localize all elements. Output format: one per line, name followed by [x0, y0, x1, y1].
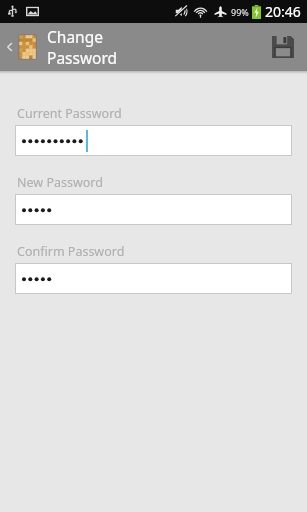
- staticText: Current Password: [17, 105, 122, 122]
- button[interactable]: Current Password: [15, 125, 292, 156]
- staticText: 99%: [231, 6, 249, 18]
- button[interactable]: Save: [259, 23, 307, 71]
- button[interactable]: Confirm Password: [15, 263, 292, 294]
- staticText: Confirm Password: [17, 243, 125, 260]
- staticText: New Password: [17, 174, 103, 191]
- button[interactable]: New Password: [15, 194, 292, 225]
- staticText: 20:46: [265, 2, 301, 21]
- button[interactable]: Navigate up: [0, 23, 154, 71]
- staticText: Change Password: [47, 26, 154, 68]
